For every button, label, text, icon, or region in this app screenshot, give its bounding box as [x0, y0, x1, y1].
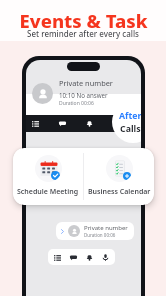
button[interactable]: Notifications — [83, 117, 96, 130]
button[interactable]: Recents — [51, 251, 64, 264]
staticText: Business Calendar — [88, 187, 151, 197]
staticText: After — [119, 110, 141, 122]
staticText: Events & Task — [19, 8, 148, 33]
button[interactable]: Recents — [29, 117, 42, 130]
button[interactable]: Messages — [56, 117, 69, 130]
staticText: Set reminder after every calls — [27, 28, 139, 39]
staticText: Private number — [84, 224, 128, 232]
button[interactable]: Business Calendar — [84, 148, 154, 205]
button[interactable]: Schedule Meeting — [13, 148, 83, 205]
button[interactable]: Messages — [67, 251, 80, 264]
button[interactable]: Private number — [56, 222, 134, 240]
staticText: Duration 00:06 — [84, 232, 116, 238]
staticText: Duration 00:06 — [59, 100, 94, 107]
button[interactable]: Voicemail — [99, 251, 112, 264]
staticText: Calls — [120, 123, 141, 135]
button[interactable]: Notifications — [83, 251, 96, 264]
staticText: 10:10 No answer — [59, 91, 108, 99]
staticText: Private number — [59, 78, 113, 88]
staticText: Schedule Meeting — [17, 187, 79, 197]
